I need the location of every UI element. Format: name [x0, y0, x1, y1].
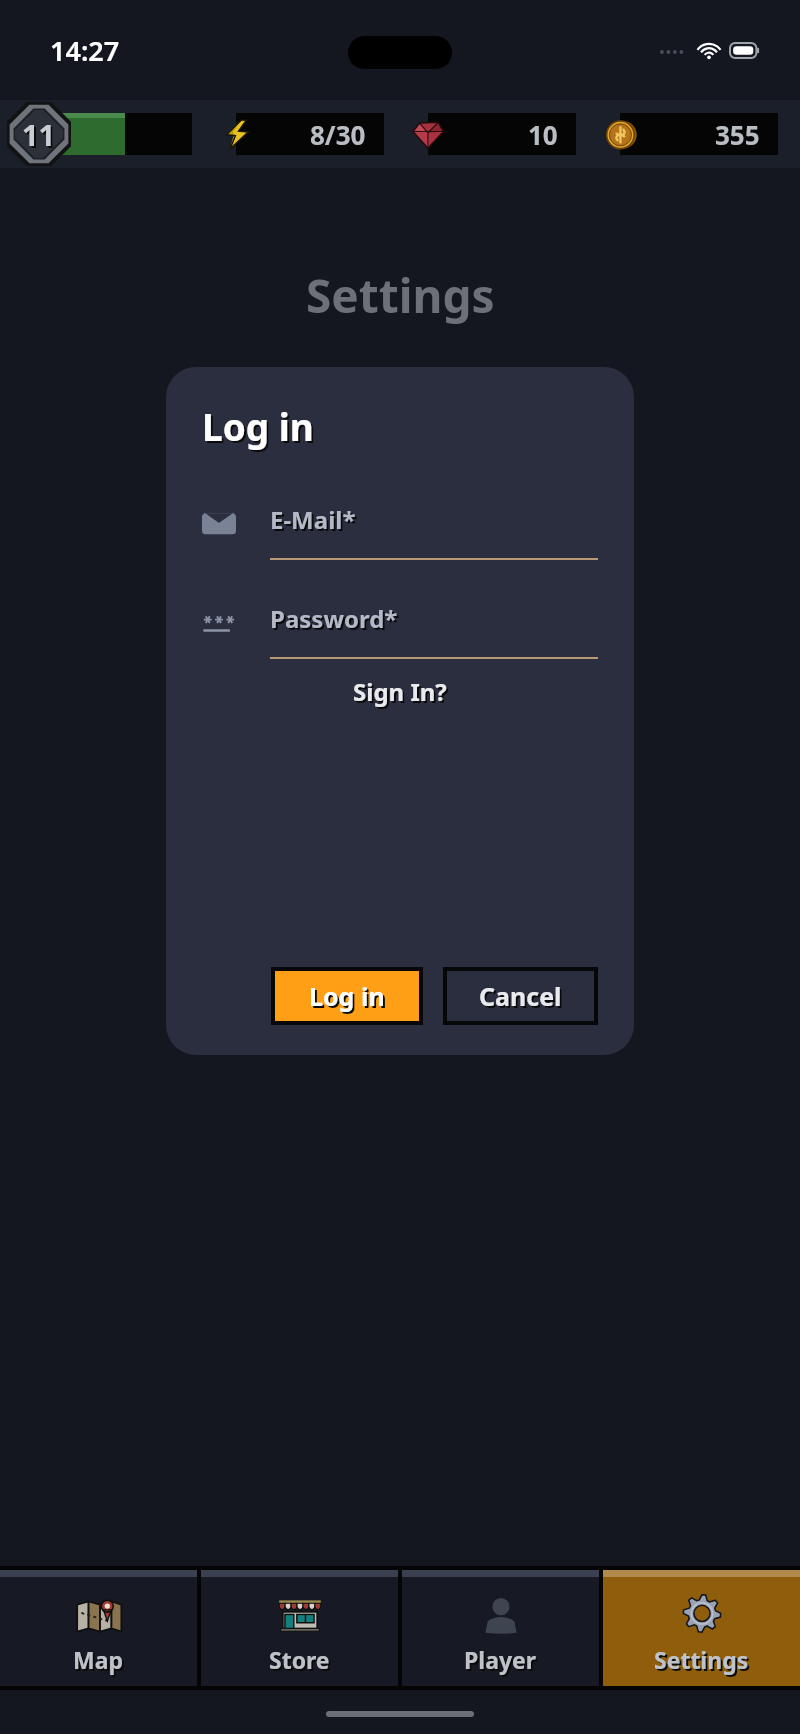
- button[interactable]: Settings: [603, 1570, 800, 1686]
- button[interactable]: E-Mail*: [270, 503, 598, 560]
- staticText: Map: [73, 1644, 124, 1675]
- staticText: Password*: [272, 604, 400, 637]
- staticText: Settings: [656, 1646, 751, 1677]
- staticText: 8/30: [310, 117, 366, 152]
- staticText: Sign In?: [353, 675, 447, 708]
- staticText: Log in: [202, 401, 314, 451]
- button[interactable]: Log in: [275, 971, 419, 1021]
- button[interactable]: Sign In?: [202, 675, 598, 708]
- staticText: Settings: [654, 1644, 749, 1675]
- staticText: Store: [269, 1644, 330, 1675]
- staticText: Player: [464, 1644, 537, 1675]
- staticText: Sign In?: [355, 677, 449, 710]
- staticText: Log in: [204, 403, 316, 453]
- staticText: Cancel: [481, 981, 564, 1015]
- button[interactable]: Player: [402, 1570, 599, 1686]
- button[interactable]: Password*: [270, 602, 598, 659]
- staticText: Cancel: [479, 979, 562, 1013]
- staticText: E-Mail*: [270, 503, 356, 536]
- staticText: 10: [528, 117, 558, 152]
- staticText: Password*: [270, 602, 398, 635]
- staticText: Player: [466, 1646, 539, 1677]
- staticText: 355: [715, 117, 760, 152]
- staticText: 14:27: [50, 32, 120, 69]
- staticText: 11: [22, 115, 56, 154]
- staticText: Log in: [309, 979, 385, 1013]
- staticText: Store: [271, 1646, 332, 1677]
- staticText: Log in: [311, 981, 387, 1015]
- button[interactable]: Map: [0, 1570, 197, 1686]
- button[interactable]: Store: [201, 1570, 398, 1686]
- button[interactable]: Cancel: [447, 971, 594, 1021]
- staticText: 11: [24, 117, 58, 156]
- staticText: Map: [75, 1646, 126, 1677]
- staticText: Settings: [306, 264, 495, 327]
- staticText: E-Mail*: [272, 505, 358, 538]
